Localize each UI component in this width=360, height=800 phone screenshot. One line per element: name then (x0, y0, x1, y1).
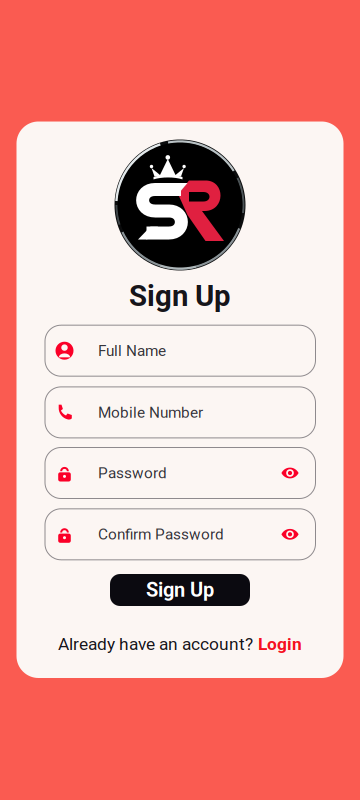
staticText: Already have an account? (58, 634, 253, 654)
button[interactable]: Confirm Password (44, 508, 316, 560)
button[interactable]: Sign Up (110, 574, 250, 606)
staticText: Full Name (98, 342, 166, 360)
staticText: Password (98, 464, 167, 482)
staticText: Login (258, 634, 302, 654)
button[interactable]: Full Name (44, 325, 316, 377)
staticText: Mobile Number (98, 403, 203, 421)
button[interactable]: Mobile Number (44, 386, 316, 438)
button[interactable]: Password (44, 447, 316, 499)
staticText: Sign Up (129, 279, 231, 313)
button[interactable]: Login (258, 634, 302, 654)
staticText: Sign Up (146, 578, 214, 602)
staticText: Confirm Password (98, 525, 224, 543)
